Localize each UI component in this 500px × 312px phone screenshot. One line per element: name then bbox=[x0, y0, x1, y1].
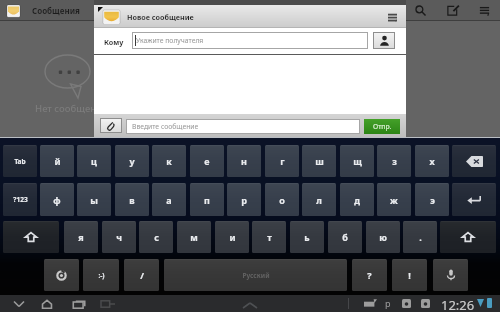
button[interactable]: Screenshot bbox=[95, 295, 120, 312]
button[interactable]: ?123 bbox=[3, 183, 37, 216]
button[interactable]: :-) bbox=[83, 259, 119, 291]
staticText: ч bbox=[116, 231, 122, 243]
staticText: у bbox=[129, 155, 135, 167]
button[interactable]: а bbox=[152, 183, 186, 216]
button[interactable]: ь bbox=[290, 221, 324, 253]
button[interactable]: Home bbox=[33, 295, 60, 312]
button[interactable]: я bbox=[64, 221, 98, 253]
staticText: ш bbox=[315, 155, 324, 167]
staticText: Tab bbox=[14, 157, 26, 166]
button[interactable]: л bbox=[302, 183, 336, 216]
staticText: . bbox=[419, 231, 422, 243]
button[interactable] bbox=[440, 221, 496, 253]
button[interactable] bbox=[44, 259, 79, 291]
button[interactable]: т bbox=[252, 221, 286, 253]
button[interactable]: щ bbox=[340, 145, 374, 177]
button[interactable]: ! bbox=[392, 259, 427, 291]
staticText: к bbox=[166, 155, 172, 167]
button[interactable] bbox=[433, 259, 468, 291]
button[interactable]: х bbox=[415, 145, 449, 177]
button[interactable] bbox=[452, 183, 496, 216]
button[interactable]: / bbox=[124, 259, 159, 291]
staticText: д bbox=[354, 194, 360, 206]
button[interactable]: Tab bbox=[3, 145, 37, 177]
button[interactable]: г bbox=[265, 145, 299, 177]
staticText: в bbox=[129, 194, 135, 206]
button[interactable]: й bbox=[40, 145, 74, 177]
button[interactable]: Введите сообщение bbox=[126, 119, 360, 134]
button[interactable]: ц bbox=[77, 145, 111, 177]
staticText: и bbox=[229, 231, 236, 243]
button[interactable]: . bbox=[403, 221, 437, 253]
button[interactable]: б bbox=[328, 221, 362, 253]
button[interactable]: в bbox=[115, 183, 149, 216]
button[interactable]: ы bbox=[77, 183, 111, 216]
staticText: Кому bbox=[104, 37, 124, 47]
staticText: э bbox=[430, 194, 435, 206]
button[interactable]: Choose contact bbox=[373, 32, 395, 49]
staticText: :-) bbox=[98, 271, 105, 280]
staticText: м bbox=[190, 231, 198, 243]
staticText: ю bbox=[379, 231, 387, 243]
staticText: Новое сообщение bbox=[127, 12, 194, 22]
button[interactable]: Recent apps bbox=[66, 295, 93, 312]
button[interactable]: п bbox=[190, 183, 224, 216]
staticText: е bbox=[204, 155, 210, 167]
staticText: а bbox=[166, 194, 172, 206]
button[interactable]: Отпр. bbox=[364, 119, 400, 134]
button[interactable]: р bbox=[227, 183, 261, 216]
staticText: щ bbox=[353, 155, 362, 167]
button[interactable]: з bbox=[377, 145, 411, 177]
button[interactable]: с bbox=[139, 221, 173, 253]
button[interactable]: ю bbox=[366, 221, 400, 253]
button[interactable]: у bbox=[115, 145, 149, 177]
button[interactable]: н bbox=[227, 145, 261, 177]
button[interactable]: New message bbox=[442, 0, 463, 21]
staticText: т bbox=[267, 231, 272, 243]
staticText: ф bbox=[53, 194, 61, 206]
staticText: Введите сообщение bbox=[132, 122, 199, 131]
staticText: Укажите получателя bbox=[136, 36, 204, 45]
staticText: Отпр. bbox=[373, 122, 392, 131]
button[interactable]: ж bbox=[377, 183, 411, 216]
button[interactable]: Search bbox=[410, 0, 431, 21]
button[interactable]: Menu bbox=[382, 7, 402, 27]
button[interactable]: Укажите получателя bbox=[132, 32, 368, 49]
staticText: ? bbox=[367, 269, 372, 281]
staticText: я bbox=[78, 231, 84, 243]
staticText: л bbox=[316, 194, 322, 206]
staticText: о bbox=[279, 194, 285, 206]
staticText: х bbox=[429, 155, 435, 167]
button[interactable]: ф bbox=[40, 183, 74, 216]
staticText: p bbox=[385, 297, 391, 309]
button[interactable]: д bbox=[340, 183, 374, 216]
staticText: н bbox=[241, 155, 247, 167]
button[interactable] bbox=[452, 145, 496, 177]
button[interactable]: Back bbox=[5, 295, 32, 312]
staticText: б bbox=[342, 231, 348, 243]
staticText: Нет сообщений bbox=[35, 102, 109, 115]
staticText: з bbox=[392, 155, 397, 167]
staticText: г bbox=[280, 155, 285, 167]
button[interactable]: е bbox=[190, 145, 224, 177]
button[interactable]: More options bbox=[474, 0, 495, 21]
button[interactable]: ? bbox=[352, 259, 387, 291]
staticText: с bbox=[154, 231, 159, 243]
staticText: Сообщения bbox=[32, 5, 80, 16]
staticText: 12:26 bbox=[441, 296, 475, 312]
button[interactable]: э bbox=[415, 183, 449, 216]
button[interactable]: ч bbox=[102, 221, 136, 253]
button[interactable]: Attach bbox=[100, 118, 122, 133]
button[interactable]: м bbox=[177, 221, 211, 253]
staticText: ы bbox=[90, 194, 98, 206]
staticText: п bbox=[204, 194, 210, 206]
button[interactable]: к bbox=[152, 145, 186, 177]
button[interactable]: и bbox=[215, 221, 249, 253]
button[interactable]: о bbox=[265, 183, 299, 216]
staticText: р bbox=[241, 194, 247, 206]
button[interactable] bbox=[3, 221, 59, 253]
staticText: ! bbox=[408, 269, 411, 281]
button[interactable]: ш bbox=[302, 145, 336, 177]
button[interactable]: Русский bbox=[164, 259, 347, 291]
staticText: ?123 bbox=[13, 195, 28, 204]
